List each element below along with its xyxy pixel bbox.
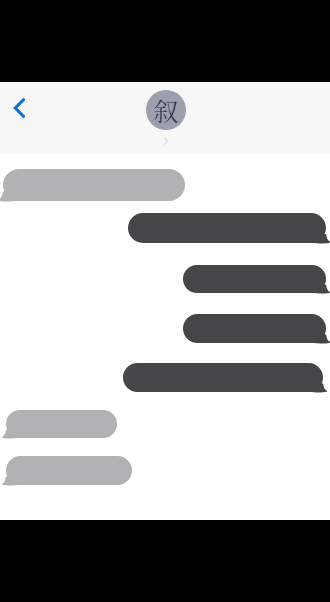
button[interactable]: Sent message (183, 314, 326, 343)
button[interactable]: Back (4, 90, 34, 120)
button[interactable]: Sent message (183, 265, 326, 293)
staticText: 叙 (153, 92, 179, 128)
button[interactable]: Sent message (123, 363, 323, 392)
button[interactable]: Received message (3, 169, 185, 201)
button[interactable]: Sent message (128, 213, 326, 243)
button[interactable]: Contact details (146, 90, 186, 145)
button[interactable]: Received message (6, 456, 132, 485)
button[interactable]: Received message (6, 410, 117, 438)
